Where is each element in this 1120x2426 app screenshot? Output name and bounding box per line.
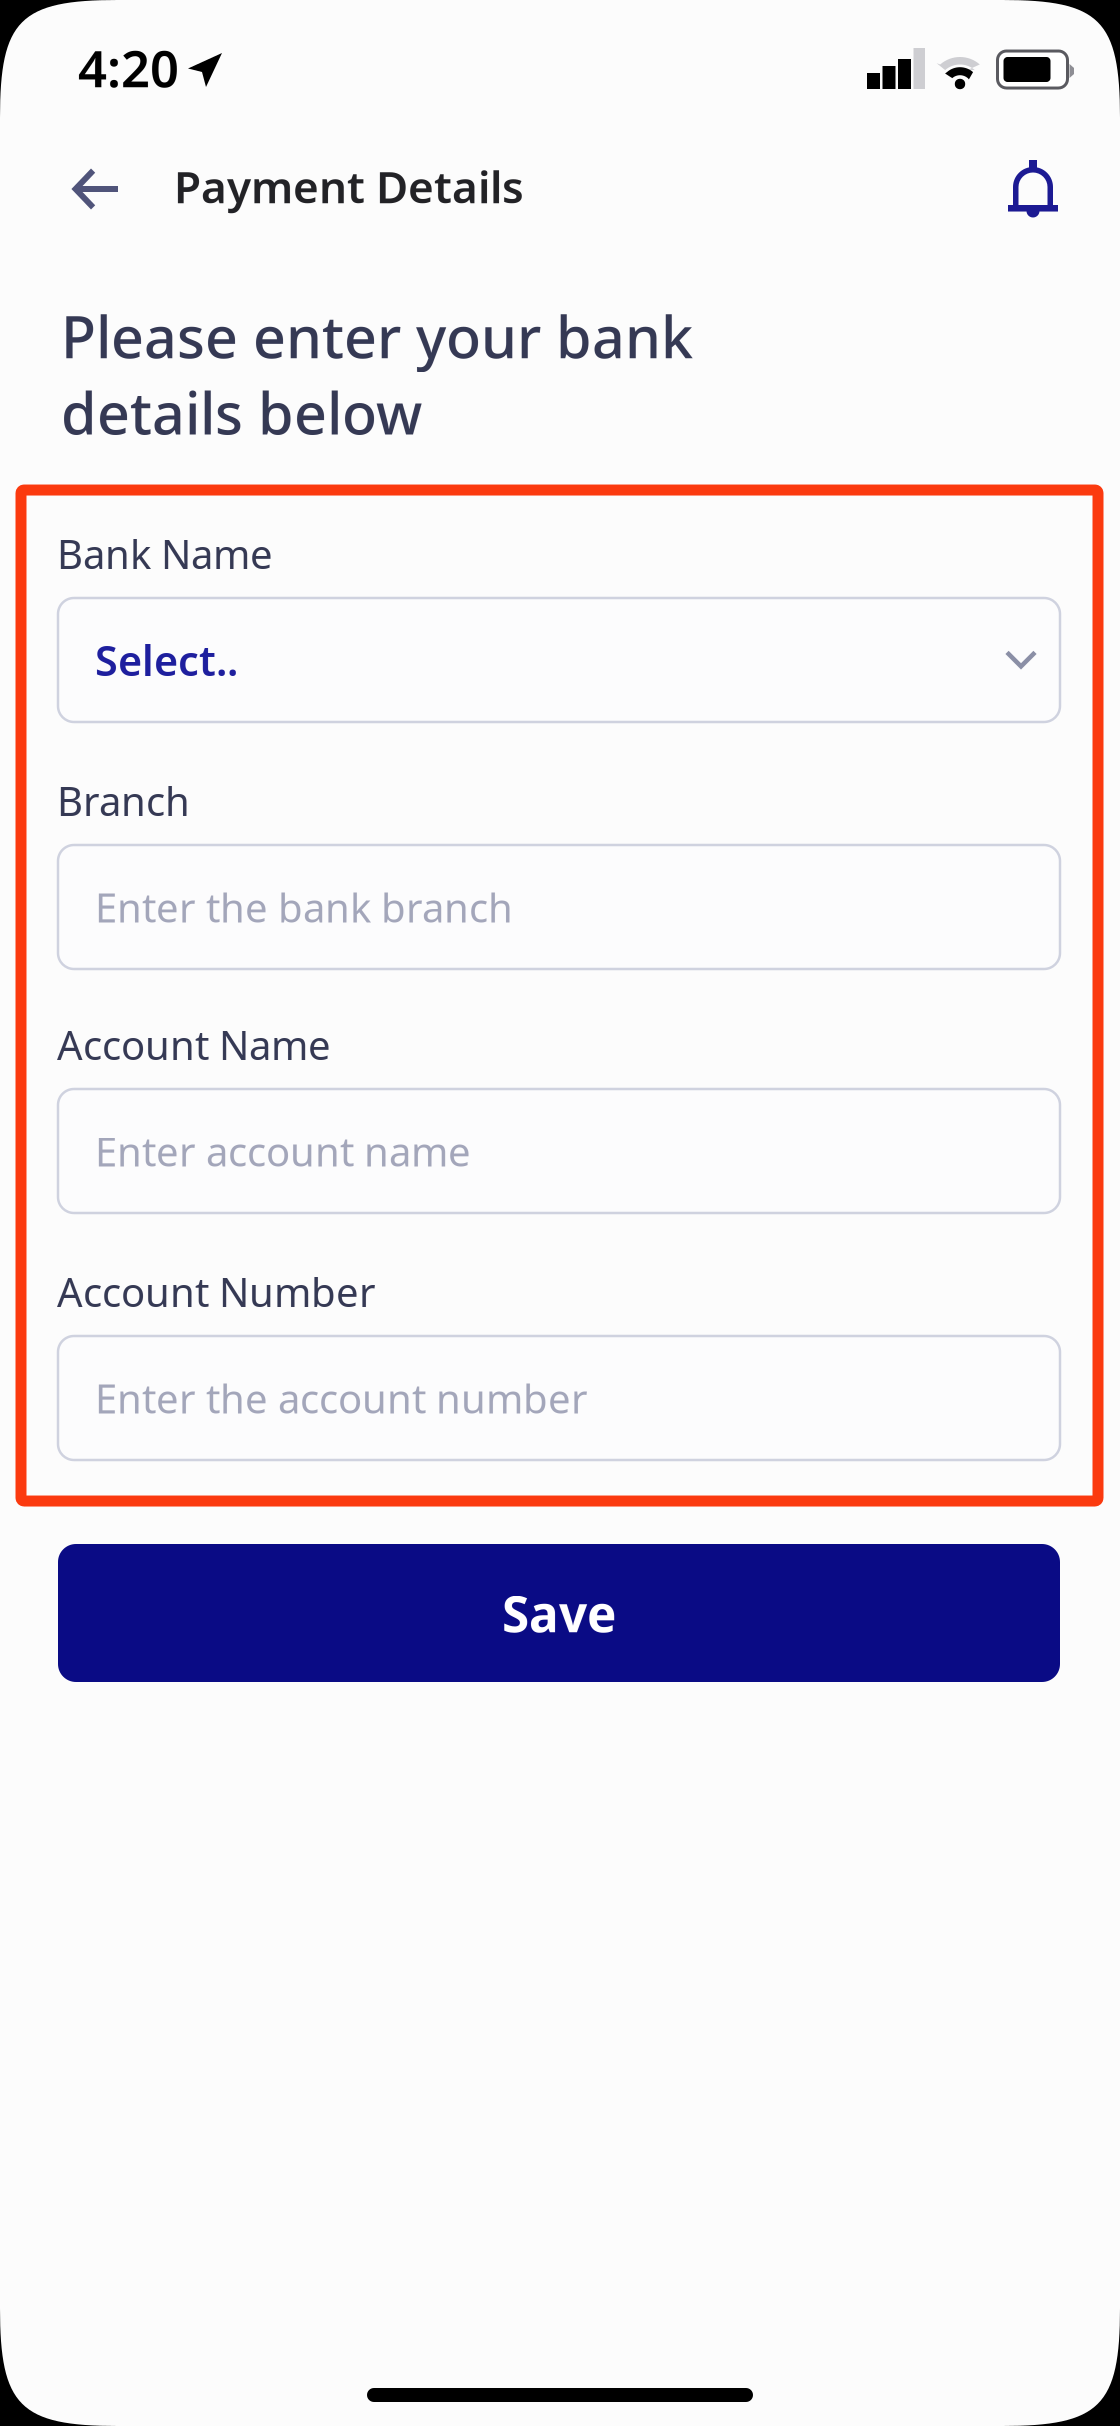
staticText: 4:20 bbox=[78, 34, 179, 101]
staticText: Select.. bbox=[95, 633, 238, 687]
staticText: Branch bbox=[57, 774, 190, 827]
staticText: details below bbox=[61, 374, 422, 450]
staticText: Account Number bbox=[57, 1265, 376, 1318]
button[interactable]: Enter the bank branch bbox=[58, 845, 1060, 969]
button[interactable]: Enter account name bbox=[58, 1089, 1060, 1213]
staticText: Save bbox=[502, 1580, 616, 1646]
button[interactable]: Save bbox=[58, 1544, 1060, 1682]
button[interactable]: Select.. bbox=[58, 598, 1060, 722]
button[interactable]: Enter the account number bbox=[58, 1336, 1060, 1460]
button[interactable]: Back bbox=[53, 148, 137, 232]
staticText: Enter the bank branch bbox=[95, 880, 513, 933]
staticText: Payment Details bbox=[174, 157, 524, 215]
staticText: Please enter your bank bbox=[61, 298, 693, 374]
button[interactable]: Notifications bbox=[991, 149, 1075, 233]
staticText: Bank Name bbox=[57, 527, 273, 580]
staticText: Account Name bbox=[57, 1018, 331, 1071]
staticText: Enter account name bbox=[95, 1124, 471, 1177]
staticText: Enter the account number bbox=[95, 1371, 588, 1424]
